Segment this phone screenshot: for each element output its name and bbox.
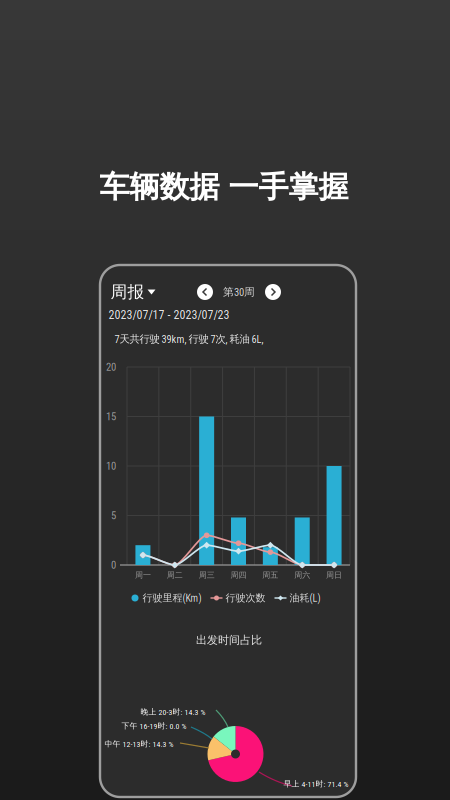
button[interactable]: 周报 (110, 281, 155, 302)
staticText: 下午 16-19时: 0.0 % (121, 721, 186, 731)
staticText: 油耗(L) (289, 592, 320, 604)
button[interactable]: Previous week (197, 284, 213, 300)
staticText: 7天共行驶 39km, 行驶 7次, 耗油 6L, (114, 332, 263, 345)
staticText: 第30周 (223, 285, 255, 299)
staticText: 中午 12-13时: 14.3 % (104, 739, 173, 749)
staticText: 周五 (262, 570, 278, 580)
staticText: 周二 (167, 570, 183, 580)
staticText: 晚上 20-3时: 14.3 % (140, 707, 205, 717)
staticText: 周六 (294, 570, 310, 580)
staticText: 行驶次数 (225, 592, 265, 604)
button[interactable]: Next week (265, 284, 281, 300)
staticText: 车辆数据 一手掌握 (99, 168, 348, 206)
staticText: 2023/07/17 - 2023/07/23 (108, 308, 229, 322)
staticText: 周日 (326, 570, 342, 580)
staticText: 5 (111, 509, 116, 522)
staticText: 出发时间占比 (196, 633, 262, 647)
staticText: 周四 (230, 570, 246, 580)
staticText: 周一 (135, 570, 151, 580)
staticText: 周三 (199, 570, 215, 580)
staticText: 10 (106, 460, 116, 472)
staticText: 15 (106, 410, 116, 423)
staticText: 20 (106, 361, 116, 373)
staticText: 0 (111, 559, 116, 571)
staticText: 早上 4-11时: 71.4 % (283, 779, 348, 789)
staticText: 行驶里程(Km) (142, 592, 201, 604)
staticText: 周报 (110, 281, 144, 302)
